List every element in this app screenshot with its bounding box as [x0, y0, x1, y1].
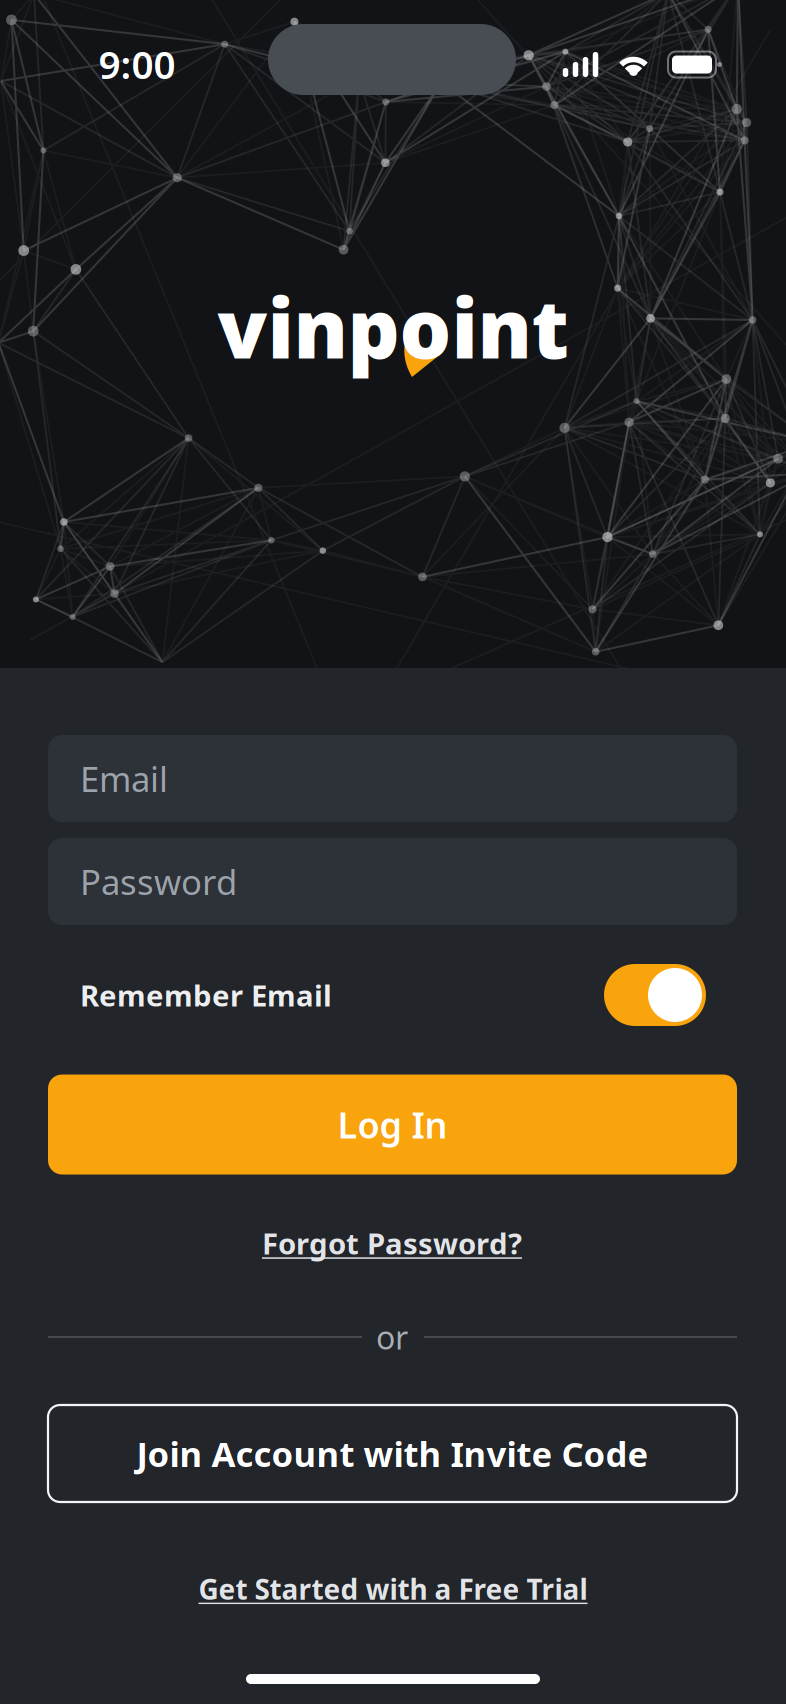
staticText: vinpoint: [217, 273, 568, 381]
button[interactable]: Get Started with a Free Trial: [198, 1570, 587, 1608]
button[interactable]: Password: [48, 838, 737, 925]
button[interactable]: Join Account with Invite Code: [48, 1405, 737, 1502]
staticText: Get Started with a Free Trial: [198, 1570, 587, 1608]
staticText: Remember Email: [80, 975, 332, 1014]
button[interactable]: Forgot Password?: [262, 1223, 522, 1262]
staticText: Email: [80, 755, 168, 801]
button[interactable]: Remember Email: [80, 964, 706, 1026]
staticText: 9:00: [98, 38, 175, 90]
staticText: Forgot Password?: [262, 1223, 522, 1262]
staticText: Join Account with Invite Code: [136, 1430, 648, 1476]
button[interactable]: Email: [48, 735, 737, 822]
staticText: Password: [80, 858, 237, 904]
button[interactable]: Log In: [48, 1074, 737, 1174]
staticText: or: [376, 1316, 408, 1358]
staticText: Log In: [337, 1101, 447, 1148]
